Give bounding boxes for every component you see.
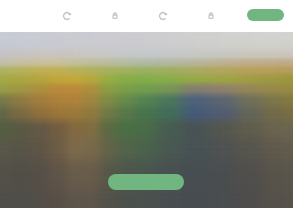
button[interactable]: Done (247, 9, 284, 21)
button[interactable]: Timer (108, 9, 122, 23)
button[interactable]: Flash (156, 9, 170, 23)
button[interactable]: Capture (108, 174, 184, 190)
button[interactable]: Rotate camera (60, 9, 74, 23)
button[interactable]: Settings (204, 9, 218, 23)
